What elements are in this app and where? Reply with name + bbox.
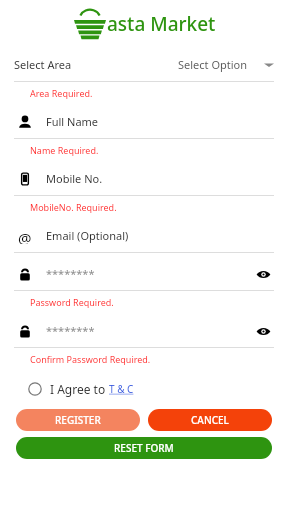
staticText: Name Required. [30, 144, 99, 156]
staticText: RESET FORM [114, 441, 174, 455]
button[interactable]: Show confirm password [252, 320, 274, 342]
staticText: REGISTER [55, 413, 101, 427]
staticText: Select Area [14, 57, 72, 72]
button[interactable]: ******** [0, 314, 288, 347]
staticText: @ [18, 228, 32, 244]
staticText: Area Required. [30, 87, 93, 99]
staticText: asta Market [107, 11, 216, 37]
staticText: Confirm Password Required. [30, 353, 151, 365]
staticText: Select Option [178, 57, 248, 72]
button[interactable]: ******** [0, 257, 288, 290]
button[interactable]: Show password [252, 263, 274, 285]
button[interactable]: I Agree to [28, 377, 134, 401]
button[interactable]: @ [0, 219, 288, 252]
button[interactable]: Full Name [0, 105, 288, 138]
staticText: Full Name [46, 114, 99, 129]
staticText: Mobile No. [46, 171, 103, 186]
staticText: I Agree to [50, 381, 109, 397]
staticText: MobileNo. Required. [30, 201, 117, 213]
button[interactable]: T & C [109, 382, 134, 396]
staticText: Email (Optional) [46, 228, 129, 243]
staticText: ******** [46, 266, 95, 281]
button[interactable]: REGISTER [16, 409, 140, 431]
staticText: Password Required. [30, 296, 114, 308]
button[interactable]: Select Area [0, 48, 288, 81]
staticText: CANCEL [191, 413, 229, 427]
button[interactable]: Mobile No. [0, 162, 288, 195]
staticText: ******** [46, 323, 95, 338]
button[interactable]: RESET FORM [16, 437, 272, 459]
button[interactable]: CANCEL [148, 409, 272, 431]
